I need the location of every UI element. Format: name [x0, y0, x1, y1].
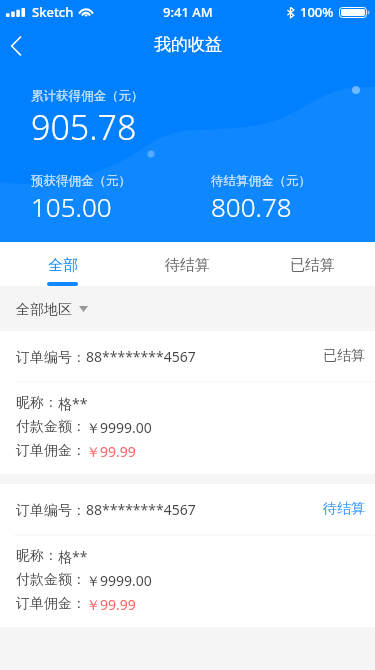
button[interactable]: Back [0, 23, 32, 65]
staticText: 格** [58, 394, 88, 413]
staticText: Sketch [32, 3, 74, 21]
staticText: 105.00 [31, 189, 112, 224]
staticText: 昵称： [16, 394, 58, 412]
staticText: 已结算 [323, 347, 365, 365]
staticText: 订单佣金： [16, 595, 86, 613]
staticText: ￥99.99 [86, 595, 136, 614]
staticText: 800.78 [211, 189, 292, 224]
staticText: 全部 [48, 256, 78, 275]
button[interactable]: 订单编号：88********4567 [0, 331, 375, 474]
staticText: 我的收益 [154, 34, 222, 55]
staticText: 订单编号：88********4567 [16, 500, 196, 519]
staticText: 付款金额： [16, 418, 86, 436]
button[interactable]: 全部地区 [16, 300, 88, 318]
staticText: 9:41 AM [163, 3, 213, 21]
button[interactable]: 待结算 [125, 242, 250, 286]
staticText: 昵称： [16, 547, 58, 565]
staticText: 付款金额： [16, 571, 86, 589]
staticText: 预获得佣金（元） [31, 173, 131, 189]
staticText: 订单编号：88********4567 [16, 347, 196, 366]
staticText: ￥9999.00 [86, 418, 152, 437]
staticText: 订单佣金： [16, 442, 86, 460]
button[interactable]: 已结算 [250, 242, 375, 286]
staticText: 待结算 [165, 256, 210, 275]
staticText: 905.78 [31, 104, 137, 150]
button[interactable]: 全部 [0, 242, 125, 286]
staticText: 待结算 [323, 500, 365, 518]
staticText: ￥99.99 [86, 442, 136, 461]
staticText: 已结算 [290, 256, 335, 275]
button[interactable]: 订单编号：88********4567 [0, 484, 375, 627]
staticText: 100% [300, 3, 334, 21]
staticText: 格** [58, 547, 88, 566]
staticText: ￥9999.00 [86, 571, 152, 590]
staticText: 累计获得佣金（元） [31, 88, 144, 104]
staticText: 待结算佣金（元） [211, 173, 311, 189]
staticText: 全部地区 [16, 301, 72, 319]
